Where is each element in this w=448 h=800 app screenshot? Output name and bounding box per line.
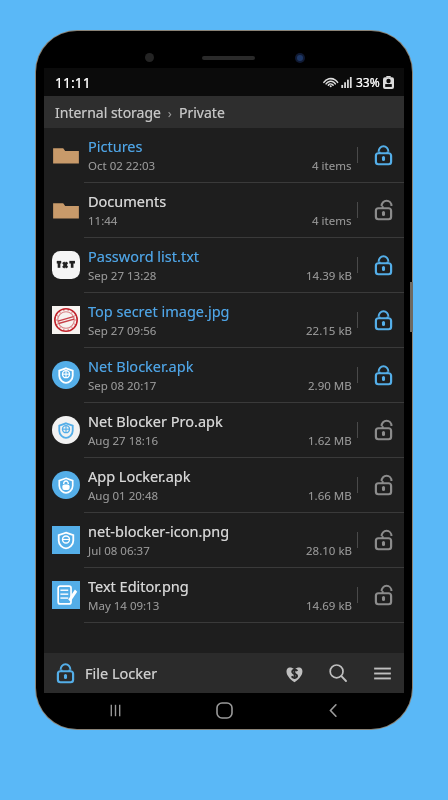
staticText: 14.39 kB (306, 268, 352, 284)
staticText: Text Editor.png (88, 576, 189, 596)
staticText: 22.15 kB (306, 323, 352, 339)
staticText: Pictures (88, 136, 143, 156)
button[interactable]: Unlocked (362, 513, 404, 567)
button[interactable]: Unlocked (362, 458, 404, 512)
staticText: File Locker (85, 663, 158, 683)
button[interactable]: Unlocked (362, 403, 404, 457)
staticText: Sep 27 09:56 (88, 323, 157, 339)
button[interactable]: Locked (362, 293, 404, 347)
button[interactable]: Unlocked (362, 183, 404, 237)
staticText: Internal storage (55, 103, 161, 122)
button[interactable]: Search (316, 653, 360, 693)
staticText: 11:44 (88, 213, 118, 229)
staticText: 4 items (312, 213, 352, 229)
staticText: Aug 27 18:16 (88, 433, 159, 449)
staticText: 4 items (312, 158, 352, 174)
staticText: 28.10 kB (306, 543, 352, 559)
button[interactable]: Top secret image.jpg (44, 293, 404, 348)
button[interactable]: File Locker (44, 653, 272, 693)
staticText: 1.66 MB (308, 488, 352, 504)
button[interactable]: Menu (360, 653, 404, 693)
staticText: net-blocker-icon.png (88, 521, 230, 541)
button[interactable]: Internal storage (44, 96, 404, 128)
button[interactable]: Password list.txt (44, 238, 404, 293)
button[interactable]: Recents (100, 695, 130, 725)
staticText: Jul 08 06:37 (88, 543, 150, 559)
button[interactable]: App Locker.apk (44, 458, 404, 513)
staticText: Aug 01 20:48 (88, 488, 159, 504)
staticText: 2.90 MB (308, 378, 352, 394)
staticText: Net Blocker.apk (88, 356, 194, 376)
staticText: 11:11 (55, 73, 91, 92)
button[interactable]: Locked (362, 238, 404, 292)
button[interactable]: Net Blocker.apk (44, 348, 404, 403)
button[interactable]: Locked (362, 348, 404, 402)
staticText: Oct 02 22:03 (88, 158, 156, 174)
button[interactable]: Documents (44, 183, 404, 238)
button[interactable]: Locked (362, 128, 404, 182)
button[interactable]: Donate (272, 653, 316, 693)
staticText: › (161, 104, 179, 122)
staticText: 1.62 MB (308, 433, 352, 449)
staticText: App Locker.apk (88, 466, 191, 486)
button[interactable]: Unlocked (362, 568, 404, 622)
staticText: Private (179, 103, 225, 122)
button[interactable]: Text Editor.png (44, 568, 404, 623)
button[interactable]: Back (318, 695, 348, 725)
button[interactable]: net-blocker-icon.png (44, 513, 404, 568)
staticText: Top secret image.jpg (88, 301, 230, 321)
staticText: Sep 08 20:17 (88, 378, 157, 394)
staticText: Net Blocker Pro.apk (88, 411, 223, 431)
staticText: May 14 09:13 (88, 598, 160, 614)
staticText: Password list.txt (88, 246, 200, 266)
staticText: Sep 27 13:28 (88, 268, 157, 284)
button[interactable]: Net Blocker Pro.apk (44, 403, 404, 458)
button[interactable]: Home (209, 695, 239, 725)
button[interactable]: Pictures (44, 128, 404, 183)
staticText: Documents (88, 191, 167, 211)
staticText: 14.69 kB (306, 598, 352, 614)
staticText: 33% (356, 74, 380, 90)
